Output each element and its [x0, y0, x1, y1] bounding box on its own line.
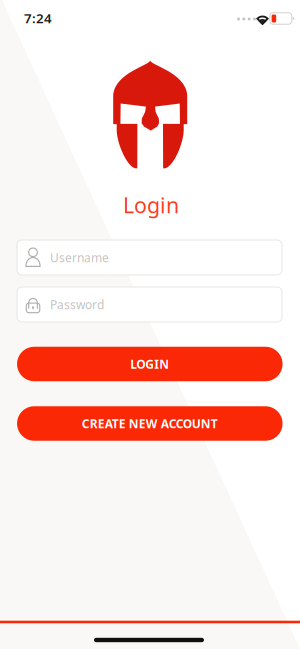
button[interactable]: Password	[17, 287, 282, 322]
staticText: CREATE NEW ACCOUNT	[82, 415, 218, 431]
button[interactable]: LOGIN	[17, 347, 283, 381]
staticText: Login	[123, 191, 179, 219]
button[interactable]: CREATE NEW ACCOUNT	[17, 406, 283, 441]
staticText: Password	[50, 296, 104, 312]
button[interactable]: Username	[17, 240, 282, 275]
staticText: Username	[50, 249, 109, 265]
staticText: LOGIN	[130, 356, 169, 372]
staticText: 7:24	[24, 9, 52, 27]
